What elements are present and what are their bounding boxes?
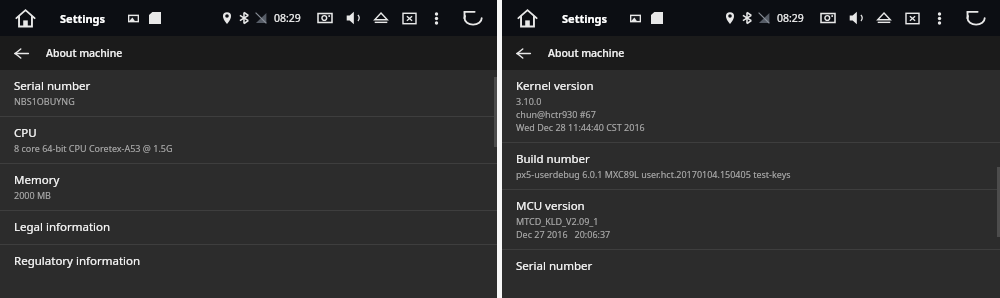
staticText: MCU version <box>516 198 585 214</box>
staticText: About machine <box>548 46 625 60</box>
button[interactable]: Navigate up <box>8 40 34 66</box>
button[interactable]: MCU version <box>502 190 1000 249</box>
staticText: Settings <box>562 11 608 26</box>
button[interactable]: Kernel version <box>502 70 1000 142</box>
staticText: CPU <box>14 125 37 141</box>
staticText: MTCD_KLD_V2.09_1 <box>516 215 599 227</box>
button[interactable]: Close <box>397 6 421 30</box>
button[interactable]: Volume <box>844 6 868 30</box>
button[interactable]: Back <box>457 3 487 33</box>
staticText: Serial number <box>516 258 593 274</box>
staticText: Regulatory information <box>14 253 141 269</box>
staticText: 08:29 <box>777 11 804 25</box>
staticText: Kernel version <box>516 78 594 94</box>
staticText: Wed Dec 28 11:44:40 CST 2016 <box>516 121 645 133</box>
staticText: 8 core 64-bit CPU Coretex-A53 @ 1.5G <box>14 142 173 154</box>
button[interactable]: Home <box>10 3 40 33</box>
staticText: Serial number <box>14 78 91 94</box>
staticText: 3.10.0 <box>516 95 542 107</box>
button[interactable]: Home <box>512 3 542 33</box>
button[interactable]: Volume <box>341 6 365 30</box>
button[interactable]: CPU <box>0 117 497 163</box>
button[interactable]: Back <box>960 3 990 33</box>
staticText: About machine <box>46 46 123 60</box>
button[interactable]: Camera <box>816 6 840 30</box>
button[interactable]: Close <box>900 6 924 30</box>
staticText: Settings <box>60 11 106 26</box>
button[interactable]: Serial number <box>502 250 1000 283</box>
button[interactable]: Legal information <box>0 211 497 244</box>
button[interactable]: Navigate up <box>510 40 536 66</box>
button[interactable]: Serial number <box>0 70 497 116</box>
button[interactable]: Regulatory information <box>0 245 497 278</box>
staticText: Legal information <box>14 219 111 235</box>
staticText: px5-userdebug 6.0.1 MXC89L user.hct.2017… <box>516 168 791 180</box>
button[interactable]: Camera <box>313 6 337 30</box>
staticText: NBS1OBUYNG <box>14 95 75 107</box>
button[interactable]: More options <box>928 7 950 29</box>
staticText: chun@hctr930 #67 <box>516 108 596 120</box>
button[interactable]: More options <box>425 7 447 29</box>
button[interactable]: Memory <box>0 164 497 210</box>
staticText: 2000 MB <box>14 189 51 201</box>
staticText: Memory <box>14 172 60 188</box>
button[interactable]: Eject <box>369 6 393 30</box>
staticText: Build number <box>516 151 590 167</box>
staticText: 08:29 <box>274 11 301 25</box>
button[interactable]: Build number <box>502 143 1000 189</box>
staticText: Dec 27 2016 20:06:37 <box>516 228 611 240</box>
button[interactable]: Eject <box>872 6 896 30</box>
